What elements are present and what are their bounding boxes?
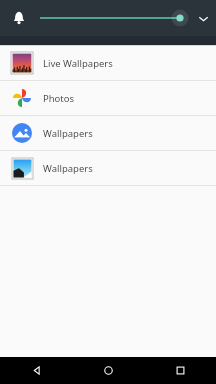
button[interactable]: Expand: [190, 0, 216, 36]
staticText: Wallpapers: [43, 162, 93, 175]
staticText: Live Wallpapers: [43, 57, 113, 70]
staticText: Wallpapers: [43, 127, 93, 140]
button[interactable]: Photos: [0, 81, 216, 115]
button[interactable]: Wallpapers: [0, 116, 216, 150]
button[interactable]: Recent apps: [144, 357, 216, 384]
button[interactable]: Live Wallpapers: [0, 46, 216, 80]
button[interactable]: Home: [72, 357, 144, 384]
button[interactable]: Back: [0, 357, 72, 384]
button[interactable]: Notifications: [0, 0, 38, 36]
staticText: Photos: [43, 92, 75, 105]
button[interactable]: Wallpapers: [0, 151, 216, 185]
button[interactable]: Brightness slider: [38, 0, 190, 36]
